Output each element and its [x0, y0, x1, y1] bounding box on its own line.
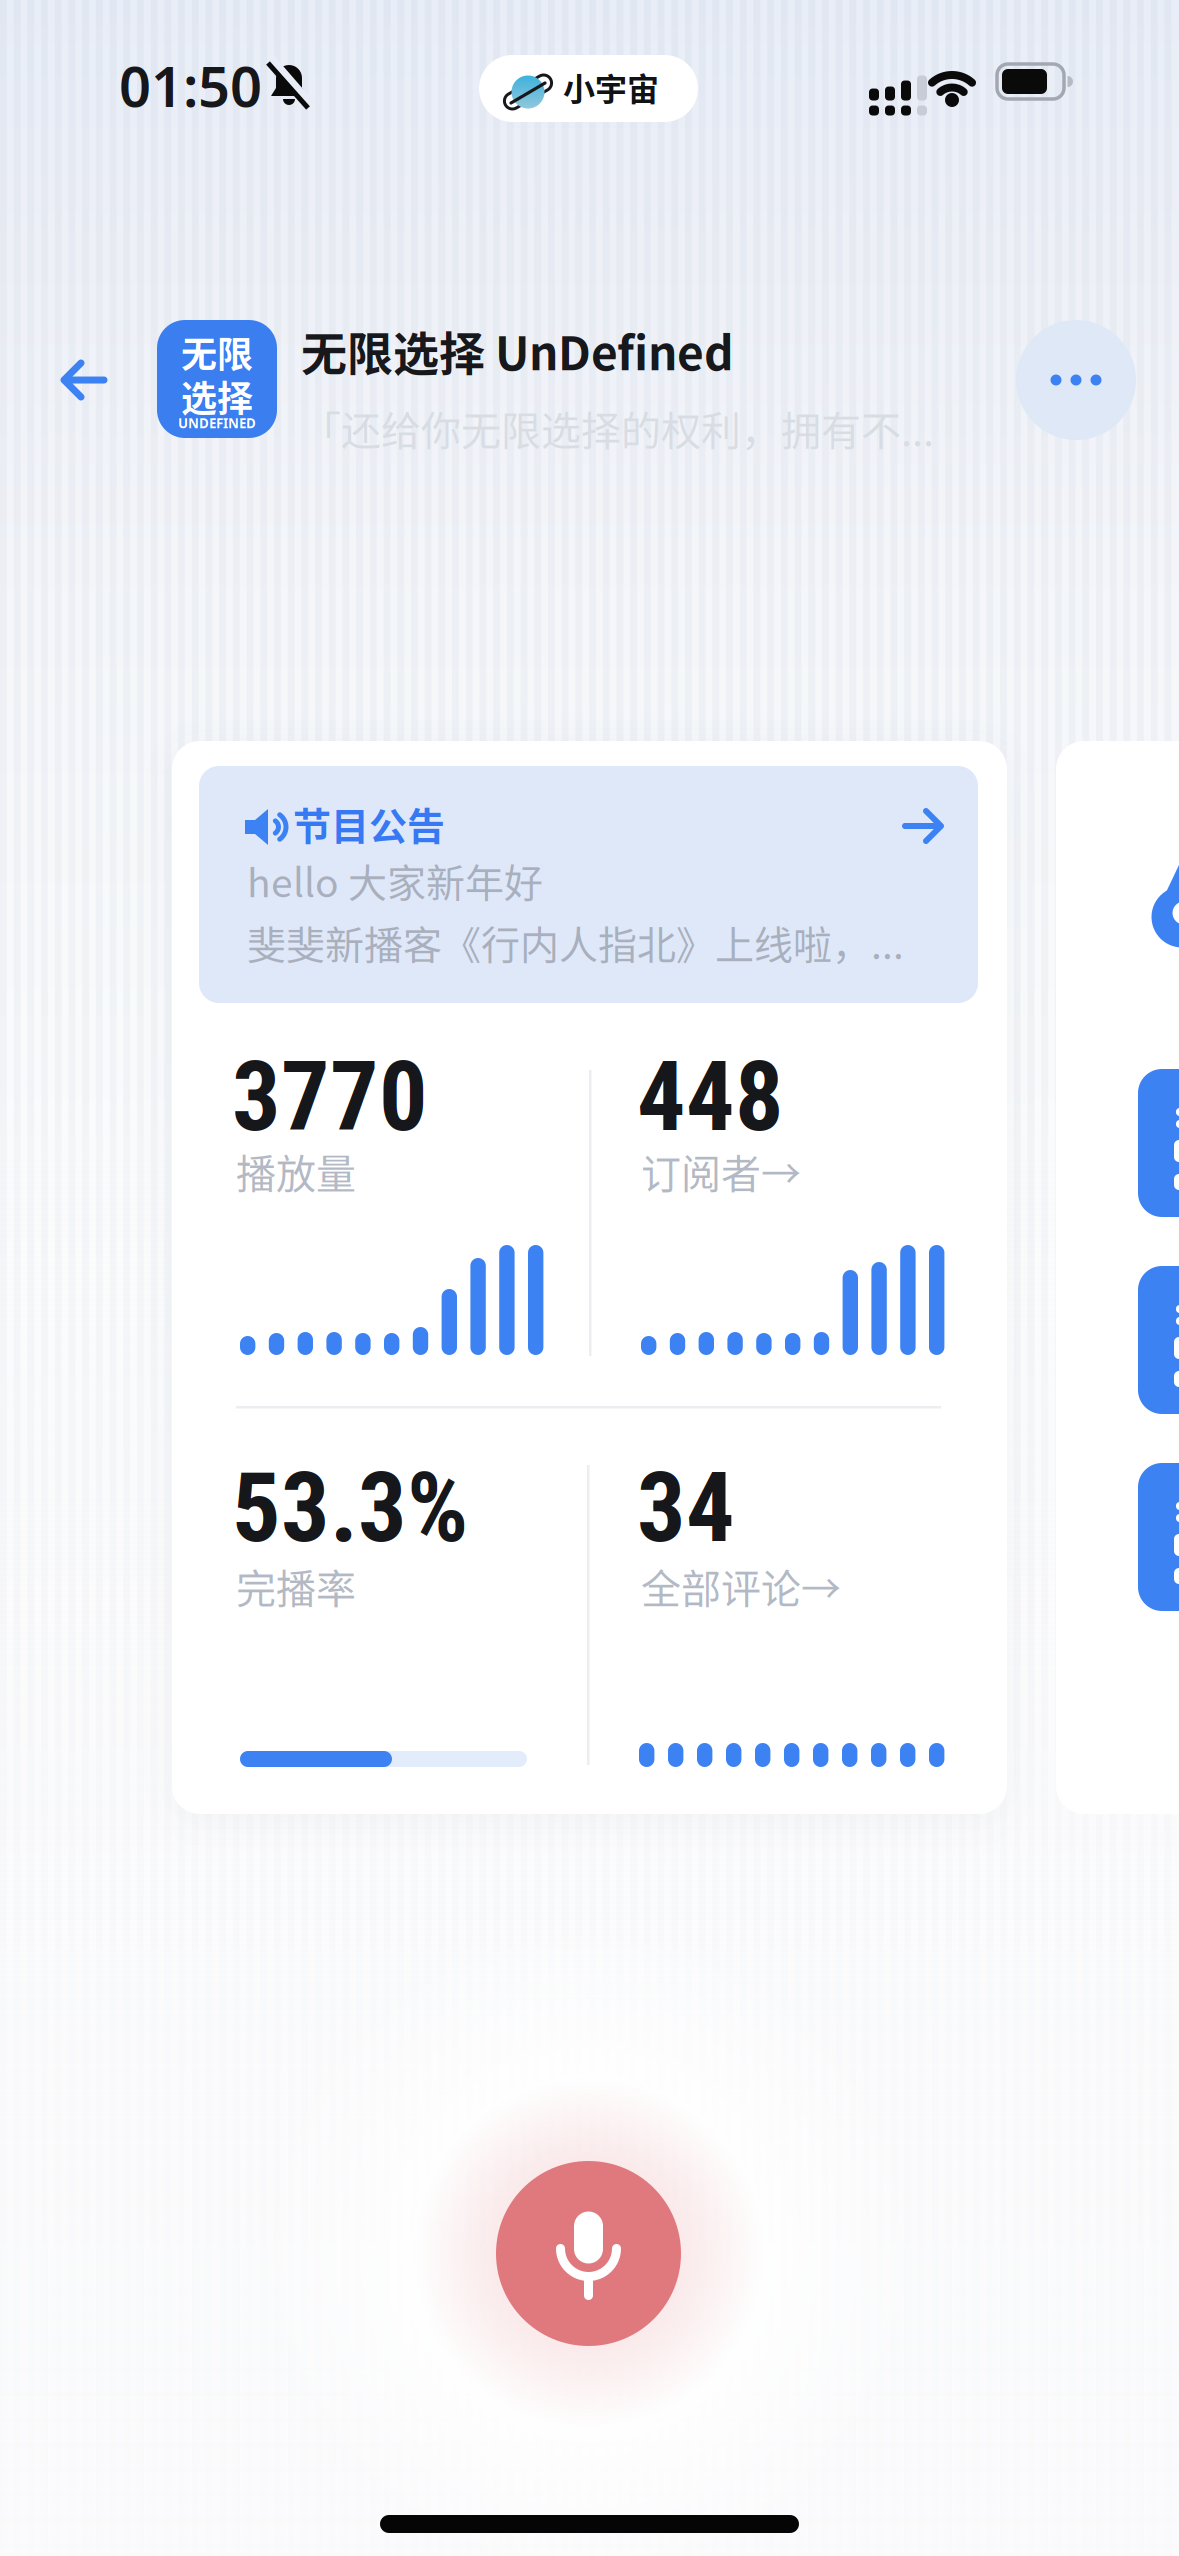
staticText: 无限	[181, 326, 253, 378]
staticText: 节目公告	[293, 796, 445, 851]
staticText: 无限选择 UnDefined	[301, 317, 734, 384]
button[interactable]: More	[1016, 320, 1136, 440]
staticText: 小宇宙	[563, 64, 659, 110]
button[interactable]: Record	[496, 2161, 681, 2346]
staticText: 「还给你无限选择的权利，拥有不...	[301, 399, 934, 457]
staticText: hello 大家新年好	[247, 852, 543, 908]
staticText: 01:50	[119, 48, 262, 122]
staticText: 448	[637, 1041, 784, 1153]
button[interactable]: Panel action 1	[1138, 1069, 1179, 1217]
staticText: 选择	[181, 370, 253, 422]
staticText: 53.3%	[232, 1452, 468, 1564]
staticText: 3770	[232, 1041, 428, 1153]
button[interactable]: 全部评论→	[641, 1557, 841, 1615]
button[interactable]: 节目公告	[199, 766, 978, 1003]
staticText: 订阅者→	[641, 1142, 801, 1200]
staticText: 斐斐新播客《行内人指北》上线啦，...	[247, 914, 904, 970]
staticText: 播放量	[236, 1142, 356, 1200]
staticText: 完播率	[236, 1557, 356, 1615]
staticText: UNDEFINED	[178, 414, 256, 432]
button[interactable]: Panel action 3	[1138, 1463, 1179, 1611]
button[interactable]: Panel action 2	[1138, 1266, 1179, 1414]
button[interactable]: Back	[58, 355, 108, 405]
button[interactable]: 订阅者→	[641, 1142, 801, 1200]
staticText: 34	[637, 1452, 735, 1564]
staticText: 全部评论→	[641, 1557, 841, 1615]
